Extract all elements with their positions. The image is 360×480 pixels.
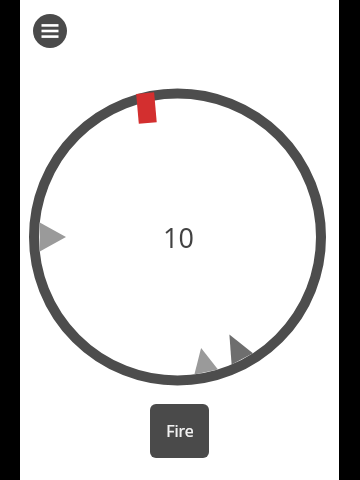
staticText: Fire (166, 420, 194, 442)
staticText: 10 (163, 219, 194, 256)
button[interactable]: Fire (150, 404, 209, 458)
button[interactable]: Open menu (33, 14, 67, 48)
